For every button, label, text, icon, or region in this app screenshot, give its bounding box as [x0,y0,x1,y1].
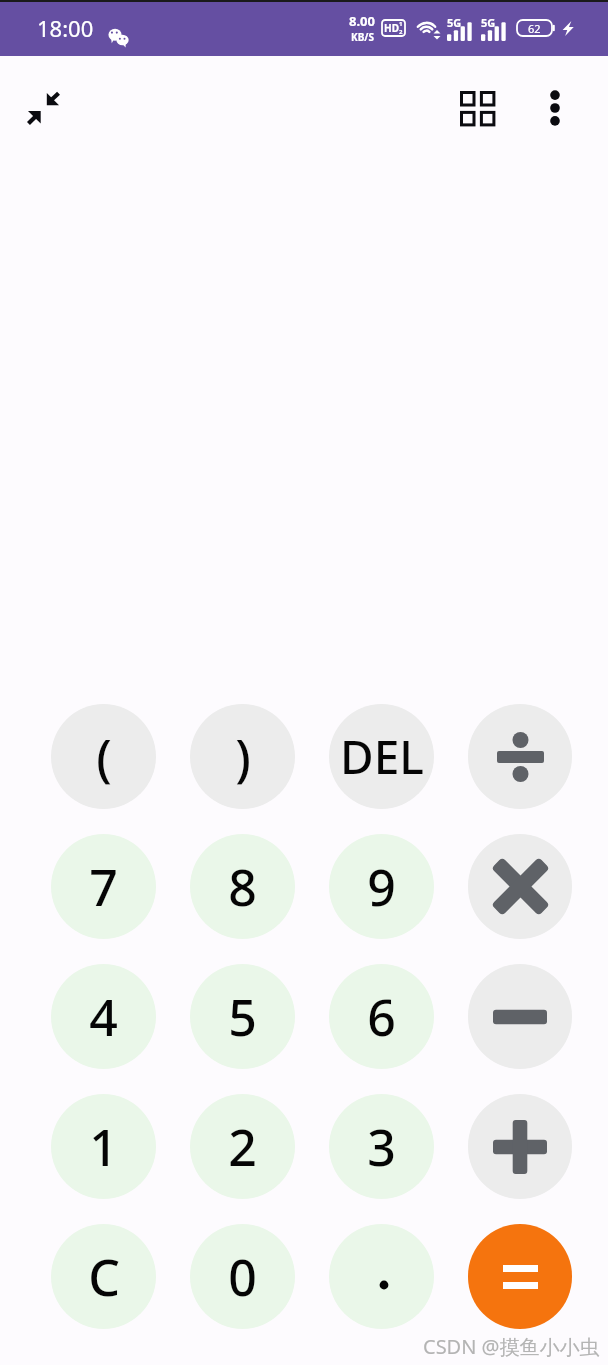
button[interactable]: 3 [329,1094,434,1199]
staticText: ) [235,723,251,791]
staticText: ( [96,723,112,791]
button[interactable]: 4 [51,964,156,1069]
staticText: 8.00 [349,12,375,30]
staticText: DEL [340,725,424,788]
button[interactable]: 6 [329,964,434,1069]
staticText: C [88,1243,120,1311]
staticText: 8 [228,853,257,921]
staticText: KB/S [351,30,374,44]
staticText: 1 [399,20,403,28]
button[interactable]: 1 [51,1094,156,1199]
staticText: 62 [528,21,541,36]
staticText: 9 [367,853,396,921]
button[interactable]: Minus [468,964,572,1069]
button[interactable]: C [51,1224,156,1329]
staticText: CSDN @摸鱼小小虫 [423,1333,600,1360]
button[interactable]: Decimal point [329,1224,434,1329]
button[interactable]: 0 [190,1224,295,1329]
staticText: 7 [89,853,118,921]
staticText: 0 [228,1243,257,1311]
staticText: 2 [228,1113,257,1181]
staticText: 1 [89,1113,118,1181]
button[interactable]: Equals [468,1224,572,1329]
button[interactable]: 8 [190,834,295,939]
button[interactable]: 9 [329,834,434,939]
staticText: 5G [481,15,496,30]
staticText: 6 [367,983,396,1051]
button[interactable]: 5 [190,964,295,1069]
button[interactable]: Collapse [14,79,72,137]
button[interactable]: More options [526,79,584,137]
button[interactable]: 7 [51,834,156,939]
button[interactable]: Grid view [448,79,506,137]
button[interactable]: 2 [190,1094,295,1199]
button[interactable]: ( [51,704,156,809]
button[interactable]: Multiply [468,834,572,939]
staticText: 4 [89,983,118,1051]
staticText: 18:00 [37,13,94,43]
button[interactable]: ) [190,704,295,809]
button[interactable]: DEL [329,704,434,809]
button[interactable]: Plus [468,1094,572,1199]
staticText: 5G [447,15,462,30]
staticText: 2 [399,28,403,36]
button[interactable]: Divide [468,704,572,809]
staticText: HD [384,21,399,35]
staticText: 3 [367,1113,396,1181]
staticText: 5 [228,983,257,1051]
